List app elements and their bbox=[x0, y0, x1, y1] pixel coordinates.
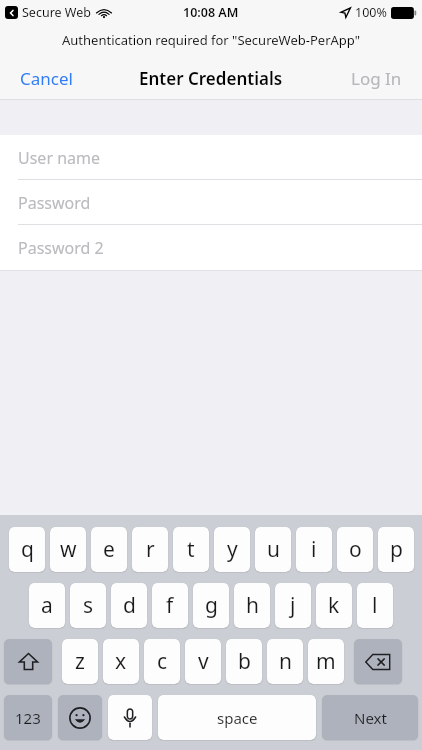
button[interactable]: d bbox=[111, 583, 147, 628]
button[interactable]: a bbox=[29, 583, 65, 628]
button[interactable]: t bbox=[173, 527, 209, 572]
button[interactable]: i bbox=[296, 527, 332, 572]
staticText: m bbox=[316, 647, 336, 676]
button[interactable]: s bbox=[70, 583, 106, 628]
button[interactable]: space bbox=[158, 695, 316, 740]
staticText: l bbox=[372, 591, 378, 620]
button[interactable]: y bbox=[214, 527, 250, 572]
button[interactable]: f bbox=[152, 583, 188, 628]
staticText: Next bbox=[354, 708, 387, 728]
staticText: p bbox=[390, 535, 403, 564]
staticText: Cancel bbox=[20, 67, 73, 90]
staticText: w bbox=[60, 535, 77, 564]
staticText: j bbox=[290, 591, 296, 620]
button[interactable]: u bbox=[255, 527, 291, 572]
staticText: g bbox=[205, 591, 218, 620]
staticText: z bbox=[75, 647, 85, 676]
button[interactable]: w bbox=[50, 527, 86, 572]
button[interactable]: v bbox=[185, 639, 221, 684]
staticText: Password 2 bbox=[18, 237, 104, 259]
staticText: c bbox=[157, 647, 168, 676]
staticText: d bbox=[123, 591, 136, 620]
staticText: e bbox=[103, 535, 115, 564]
button[interactable]: k bbox=[316, 583, 352, 628]
staticText: q bbox=[21, 535, 34, 564]
staticText: h bbox=[246, 591, 259, 620]
button[interactable]: h bbox=[234, 583, 270, 628]
button[interactable]: User name bbox=[0, 135, 422, 180]
staticText: f bbox=[166, 591, 174, 620]
staticText: s bbox=[83, 591, 94, 620]
staticText: i bbox=[311, 535, 317, 564]
staticText: b bbox=[238, 647, 251, 676]
staticText: k bbox=[328, 591, 340, 620]
staticText: 123 bbox=[15, 708, 41, 728]
staticText: 100% bbox=[355, 4, 387, 21]
staticText: 10:08 AM bbox=[183, 4, 239, 21]
button[interactable]: n bbox=[267, 639, 303, 684]
staticText: t bbox=[187, 535, 195, 564]
button[interactable]: Password bbox=[0, 180, 422, 225]
button[interactable]: Shift bbox=[4, 639, 52, 684]
staticText: v bbox=[198, 647, 209, 676]
staticText: o bbox=[349, 535, 362, 564]
button[interactable]: Next bbox=[322, 695, 418, 740]
button[interactable]: l bbox=[357, 583, 393, 628]
button[interactable]: p bbox=[378, 527, 414, 572]
button[interactable]: o bbox=[337, 527, 373, 572]
staticText: u bbox=[267, 535, 280, 564]
staticText: n bbox=[279, 647, 292, 676]
staticText: Authentication required for "SecureWeb-P… bbox=[62, 31, 360, 49]
button[interactable]: j bbox=[275, 583, 311, 628]
staticText: Password bbox=[18, 192, 91, 214]
button[interactable]: Cancel bbox=[0, 56, 93, 100]
button[interactable]: e bbox=[91, 527, 127, 572]
button[interactable]: 123 bbox=[4, 695, 52, 740]
button[interactable]: Emoji bbox=[58, 695, 102, 740]
staticText: Secure Web bbox=[22, 4, 91, 21]
button[interactable]: m bbox=[308, 639, 344, 684]
staticText: User name bbox=[18, 147, 101, 169]
button[interactable]: b bbox=[226, 639, 262, 684]
staticText: x bbox=[115, 647, 127, 676]
staticText: y bbox=[227, 535, 238, 564]
staticText: r bbox=[146, 535, 155, 564]
staticText: Log In bbox=[351, 67, 402, 90]
button[interactable]: Dictation bbox=[108, 695, 152, 740]
button[interactable]: r bbox=[132, 527, 168, 572]
button[interactable]: Backspace bbox=[354, 639, 402, 684]
button[interactable]: c bbox=[144, 639, 180, 684]
button[interactable]: g bbox=[193, 583, 229, 628]
button[interactable]: Password 2 bbox=[0, 225, 422, 270]
staticText: a bbox=[41, 591, 53, 620]
staticText: Enter Credentials bbox=[139, 67, 283, 90]
button[interactable]: q bbox=[9, 527, 45, 572]
button[interactable]: z bbox=[62, 639, 98, 684]
button[interactable]: Log In bbox=[331, 56, 422, 100]
staticText: space bbox=[217, 708, 258, 728]
button[interactable]: x bbox=[103, 639, 139, 684]
